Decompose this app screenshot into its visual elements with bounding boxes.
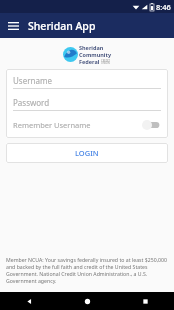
staticText: Username <box>13 75 52 86</box>
button[interactable]: Password <box>13 97 161 111</box>
staticText: Member NCUA: Your savings federally insu… <box>6 256 168 284</box>
button[interactable]: Back <box>0 292 58 310</box>
staticText: CREDIT UNION <box>101 59 110 65</box>
staticText: Sheridan <box>79 44 104 51</box>
staticText: LOGIN <box>75 148 99 158</box>
button[interactable]: Remember Username <box>13 118 161 132</box>
button[interactable]: Remember Username toggle, off <box>141 119 161 131</box>
staticText: 8:46 <box>156 2 171 12</box>
button[interactable]: Username <box>13 75 161 89</box>
button[interactable]: LOGIN <box>6 143 168 163</box>
staticText: Community <box>79 51 112 58</box>
staticText: Federal <box>79 58 100 65</box>
staticText: Password <box>13 97 50 108</box>
button[interactable]: Home <box>58 292 116 310</box>
staticText: Remember Username <box>13 120 91 130</box>
button[interactable]: Recent apps <box>116 292 174 310</box>
staticText: Sheridan App <box>28 19 96 33</box>
button[interactable]: Open navigation menu <box>4 17 22 35</box>
